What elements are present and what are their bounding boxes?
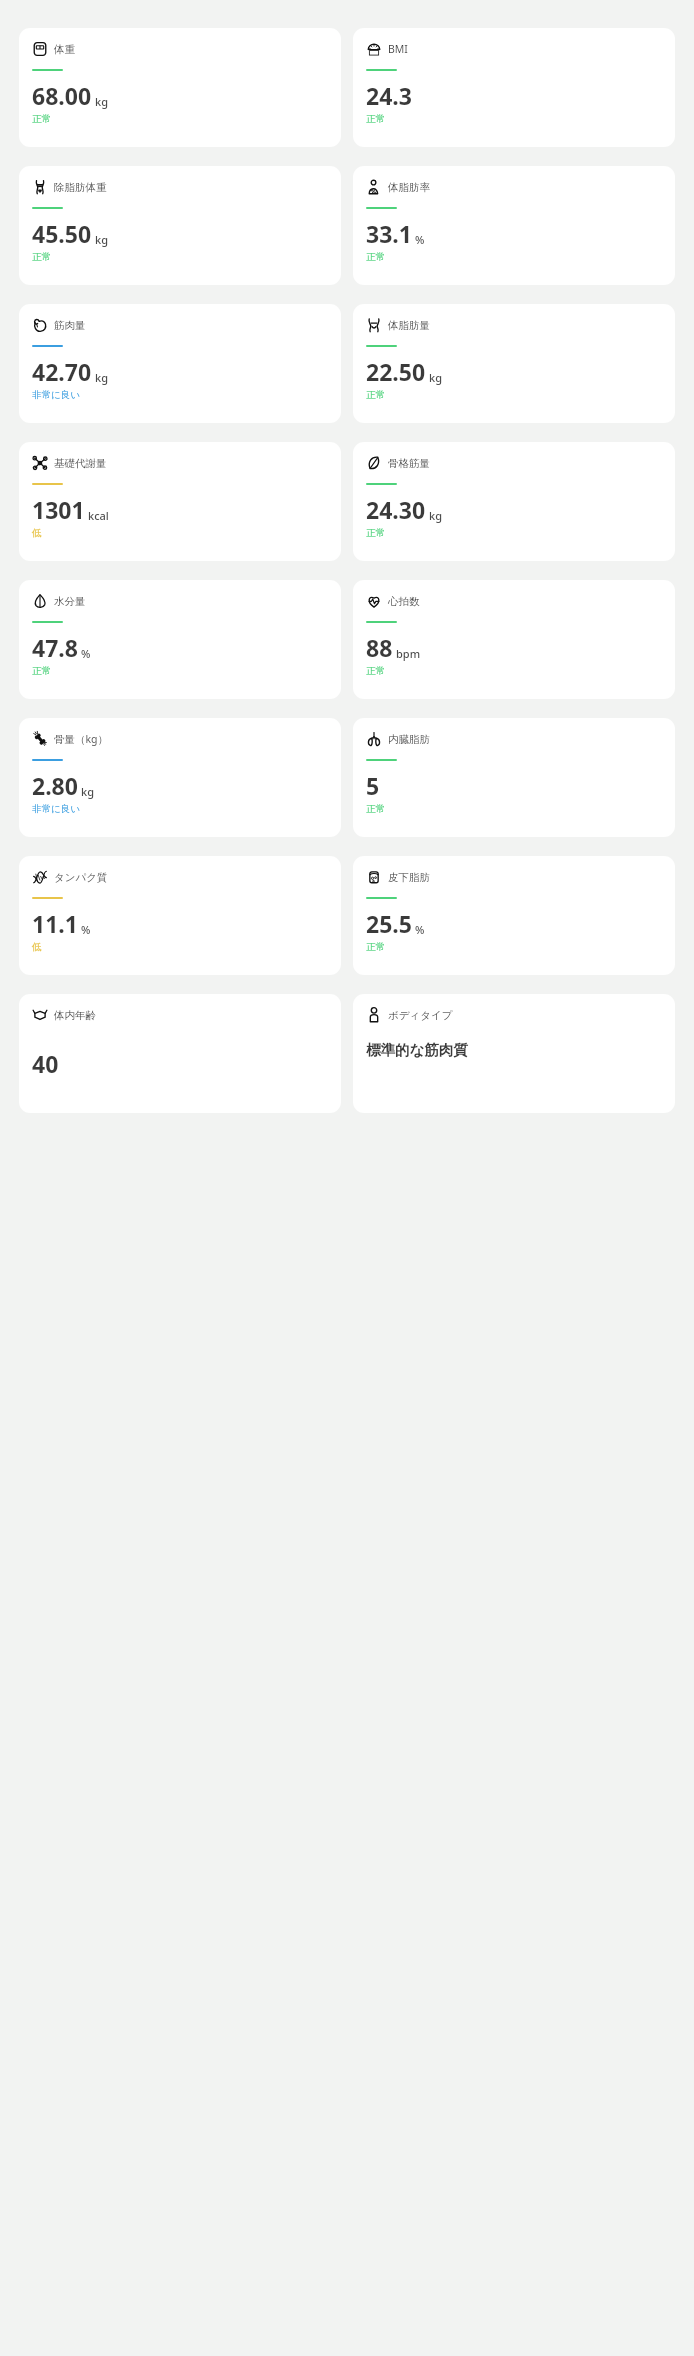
staticText: 体内年齢 [54, 1009, 96, 1022]
other: 筋肉量 [32, 317, 48, 333]
staticText: 標準的な筋肉質 [366, 1041, 468, 1059]
button[interactable]: 基礎代謝量 [19, 442, 341, 561]
staticText: kg [95, 94, 108, 109]
other: 心拍数 [366, 593, 382, 609]
staticText: 88 [366, 632, 393, 663]
staticText: 47.8 [32, 632, 78, 663]
other: 骨量（kg） [32, 731, 48, 747]
staticText: 筋肉量 [54, 319, 86, 332]
staticText: 25.5 [366, 908, 412, 939]
other: 皮下脂肪 [366, 869, 382, 885]
button[interactable]: 皮下脂肪 [353, 856, 675, 975]
staticText: 基礎代謝量 [54, 457, 107, 470]
staticText: kcal [88, 508, 109, 523]
staticText: 非常に良い [32, 803, 80, 815]
staticText: 骨量（kg） [54, 732, 109, 746]
staticText: kg [95, 370, 108, 385]
other: 内臓脂肪 [366, 731, 382, 747]
staticText: 低 [32, 527, 42, 539]
staticText: 45.50 [32, 218, 92, 249]
staticText: bpm [396, 646, 421, 661]
other: ボディタイプ [366, 1007, 382, 1023]
other: 体脂肪量 [366, 317, 382, 333]
staticText: 正常 [366, 665, 385, 677]
staticText: kg [429, 370, 442, 385]
other: 水分量 [32, 593, 48, 609]
staticText: 24.3 [366, 80, 412, 111]
staticText: 11.1 [32, 908, 78, 939]
other: BMI [366, 41, 382, 57]
button[interactable]: BMI [353, 28, 675, 147]
button[interactable]: 体内年齢 [19, 994, 341, 1113]
staticText: kg [95, 232, 108, 247]
other: 体脂肪率 [366, 179, 382, 195]
staticText: kg [429, 508, 442, 523]
other: 除脂肪体重 [32, 179, 48, 195]
button[interactable]: 水分量 [19, 580, 341, 699]
staticText: 24.30 [366, 494, 426, 525]
staticText: kg [81, 784, 94, 799]
other: 骨格筋量 [366, 455, 382, 471]
other: タンパク質 [32, 869, 48, 885]
staticText: ボディタイプ [388, 1009, 453, 1022]
staticText: 22.50 [366, 356, 426, 387]
staticText: 体脂肪量 [388, 319, 430, 332]
staticText: 正常 [32, 251, 51, 263]
staticText: 低 [32, 941, 42, 953]
staticText: タンパク質 [54, 871, 108, 884]
staticText: 正常 [366, 941, 385, 953]
staticText: 除脂肪体重 [54, 181, 107, 194]
staticText: 非常に良い [32, 389, 80, 401]
button[interactable]: 体重 [19, 28, 341, 147]
staticText: 内臓脂肪 [388, 733, 430, 746]
button[interactable]: タンパク質 [19, 856, 341, 975]
staticText: 1301 [32, 494, 85, 525]
staticText: 2.80 [32, 770, 78, 801]
staticText: 正常 [32, 113, 51, 125]
staticText: 正常 [366, 803, 385, 815]
other: 体重 [32, 41, 48, 57]
staticText: 骨格筋量 [388, 457, 430, 470]
staticText: 正常 [366, 113, 385, 125]
button[interactable]: 筋肉量 [19, 304, 341, 423]
staticText: % [81, 922, 91, 937]
staticText: 体脂肪率 [388, 181, 430, 194]
staticText: 正常 [32, 665, 51, 677]
other: 体内年齢 [32, 1007, 48, 1023]
staticText: 68.00 [32, 80, 92, 111]
button[interactable]: 体脂肪量 [353, 304, 675, 423]
staticText: % [81, 646, 91, 661]
button[interactable]: 骨量（kg） [19, 718, 341, 837]
staticText: % [415, 922, 425, 937]
staticText: 体重 [54, 43, 75, 56]
button[interactable]: 心拍数 [353, 580, 675, 699]
staticText: 正常 [366, 251, 385, 263]
button[interactable]: 骨格筋量 [353, 442, 675, 561]
staticText: 心拍数 [388, 595, 420, 608]
staticText: 33.1 [366, 218, 412, 249]
staticText: BMI [388, 42, 408, 56]
staticText: 40 [32, 1048, 59, 1079]
button[interactable]: ボディタイプ [353, 994, 675, 1113]
staticText: 42.70 [32, 356, 92, 387]
staticText: 皮下脂肪 [388, 871, 430, 884]
staticText: 正常 [366, 527, 385, 539]
button[interactable]: 体脂肪率 [353, 166, 675, 285]
staticText: 5 [366, 770, 380, 801]
other: 基礎代謝量 [32, 455, 48, 471]
button[interactable]: 除脂肪体重 [19, 166, 341, 285]
staticText: 水分量 [54, 595, 86, 608]
button[interactable]: 内臓脂肪 [353, 718, 675, 837]
staticText: % [415, 232, 425, 247]
staticText: 正常 [366, 389, 385, 401]
